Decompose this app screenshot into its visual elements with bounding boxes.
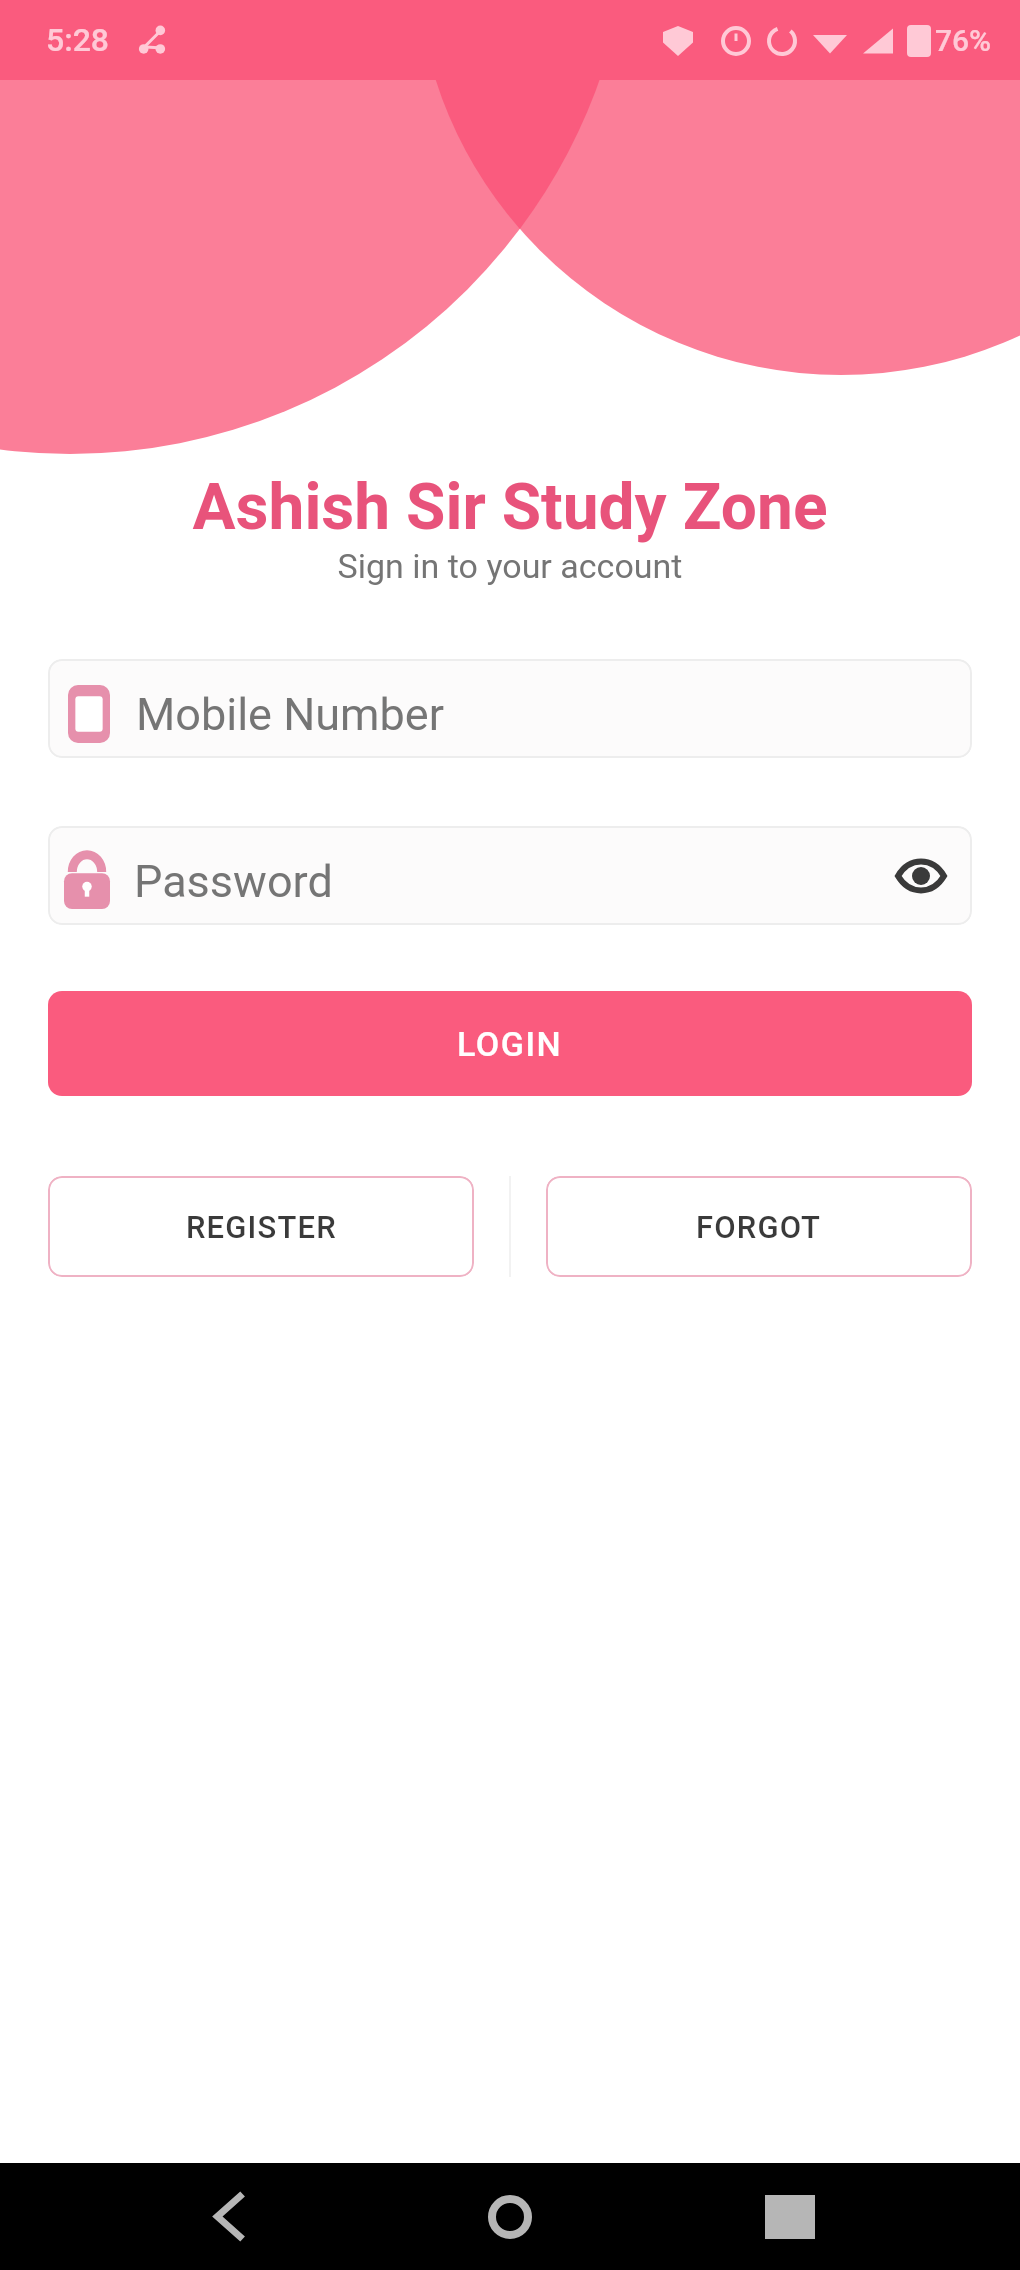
staticText: LOGIN [457,1024,563,1064]
staticText: Mobile Number [136,688,444,741]
staticText: Ashish Sir Study Zone [0,470,1020,545]
staticText: 5:28 [46,21,110,59]
button[interactable]: Home [455,2163,565,2270]
staticText: REGISTER [186,1209,337,1245]
button[interactable]: Back [175,2163,285,2270]
button[interactable]: Show password [878,838,964,914]
button[interactable]: REGISTER [48,1176,474,1277]
staticText: Password [134,855,333,908]
staticText: Sign in to your account [0,546,1020,586]
staticText: 76% [935,23,992,58]
staticText: FORGOT [696,1209,822,1245]
button[interactable]: Password [48,826,972,925]
button[interactable]: FORGOT [546,1176,972,1277]
button[interactable]: Recents [735,2163,845,2270]
button[interactable]: Mobile Number [48,659,972,758]
button[interactable]: LOGIN [48,991,972,1096]
